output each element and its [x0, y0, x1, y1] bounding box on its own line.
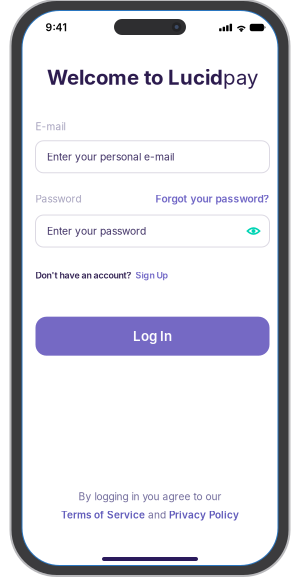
- staticText: E-mail: [35, 121, 65, 133]
- staticText: By logging in you agree to our: [78, 490, 221, 503]
- button[interactable]: Forgot your password?: [155, 193, 269, 205]
- staticText: Enter your personal e-mail: [47, 151, 174, 163]
- staticText: Enter your password: [47, 225, 146, 237]
- staticText: Terms of Service: [61, 509, 145, 521]
- staticText: Welcome to Lucid: [47, 65, 223, 90]
- staticText: Forgot your password?: [155, 193, 269, 205]
- button[interactable]: Show password: [246, 224, 260, 238]
- staticText: and: [148, 509, 166, 521]
- staticText: Don't have an account?: [35, 270, 131, 281]
- button[interactable]: Terms of Service: [61, 509, 145, 521]
- staticText: 9:41: [45, 21, 66, 34]
- button[interactable]: Sign Up: [135, 270, 167, 281]
- staticText: Log In: [133, 328, 172, 344]
- button[interactable]: Log In: [35, 317, 269, 356]
- staticText: Sign Up: [135, 270, 167, 281]
- button[interactable]: Privacy Policy: [169, 509, 239, 521]
- staticText: pay: [223, 65, 258, 90]
- staticText: Privacy Policy: [169, 509, 239, 521]
- staticText: Password: [35, 193, 81, 205]
